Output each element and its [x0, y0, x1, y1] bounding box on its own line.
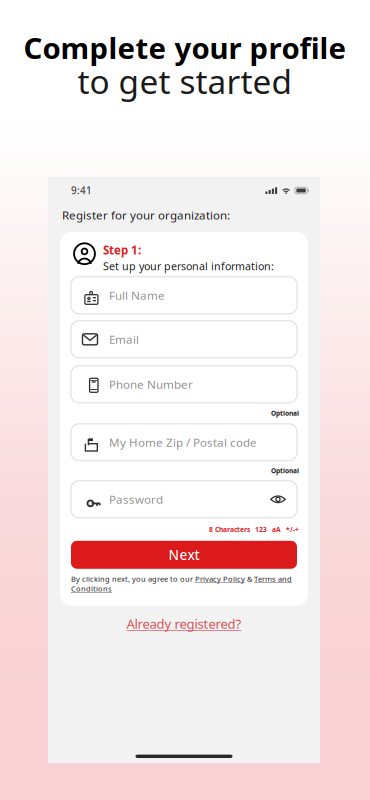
button[interactable]: Phone Number	[71, 366, 297, 403]
staticText: By clicking next, you agree to our Priva…	[71, 574, 292, 594]
staticText: Set up your personal information:	[103, 259, 274, 273]
staticText: 8 Characters	[209, 525, 250, 534]
staticText: 9:41	[71, 184, 92, 197]
staticText: */-+	[286, 525, 299, 534]
staticText: Already registered?	[126, 615, 241, 632]
staticText: Complete your profile	[23, 28, 346, 67]
staticText: Phone Number	[109, 376, 193, 392]
staticText: My Home Zip / Postal code	[109, 434, 257, 450]
staticText: aA	[272, 525, 281, 534]
staticText: 123	[255, 525, 267, 534]
button[interactable]: Password	[71, 481, 297, 518]
staticText: Step 1:	[103, 242, 141, 258]
staticText: Full Name	[109, 287, 165, 303]
staticText: Password	[109, 491, 163, 507]
button[interactable]: Full Name	[71, 277, 297, 314]
staticText: Email	[109, 331, 139, 347]
staticText: to get started	[77, 59, 292, 103]
staticText: Next	[168, 545, 199, 564]
staticText: Optional	[271, 466, 299, 475]
button[interactable]: My Home Zip / Postal code	[71, 424, 297, 461]
button[interactable]: Already registered?	[126, 617, 241, 631]
button[interactable]: Email	[71, 321, 297, 358]
button[interactable]: Next	[71, 541, 297, 569]
staticText: Register for your organization:	[62, 207, 230, 223]
staticText: Optional	[271, 409, 299, 418]
